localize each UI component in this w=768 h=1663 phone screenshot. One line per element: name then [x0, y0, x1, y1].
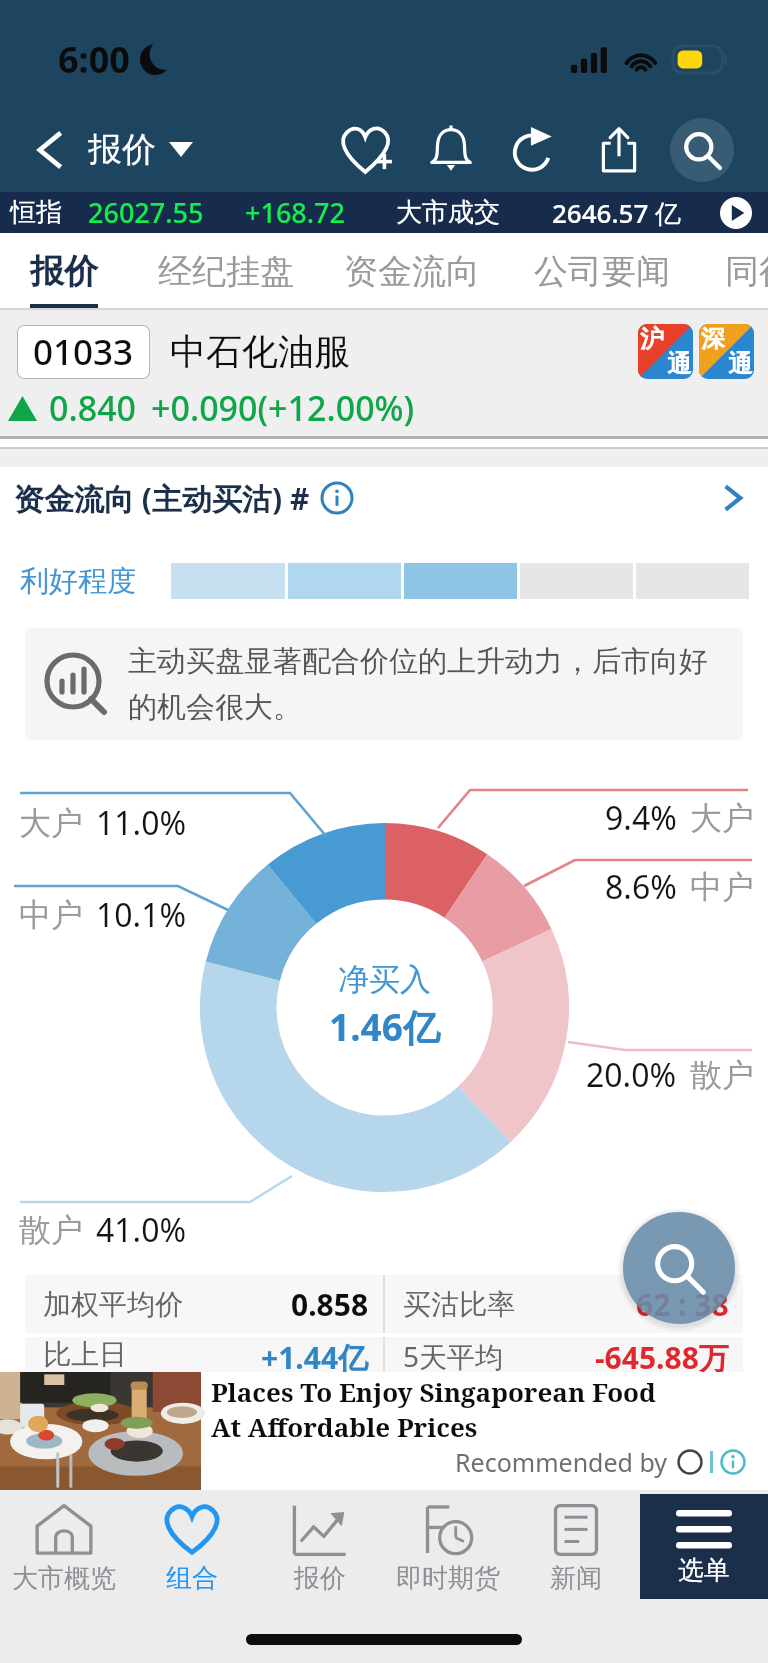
staticText: 报价 [30, 250, 98, 293]
button[interactable]: 即时期货 [384, 1494, 512, 1599]
staticText: 利好程度 [20, 563, 136, 600]
button[interactable]: 资金流向 (主动买沽) # [14, 467, 748, 529]
staticText: 恒指 [10, 196, 62, 229]
button[interactable]: 新闻 [512, 1494, 640, 1599]
button[interactable]: Alerts [416, 107, 486, 192]
staticText: 主动买盘显著配合价位的上升动力，后市向好的机会很大。 [128, 643, 718, 726]
staticText: 净买入 [338, 960, 431, 999]
button[interactable]: Back [20, 107, 80, 192]
button[interactable]: Search [623, 1212, 735, 1324]
staticText: 中石化油服 [170, 329, 350, 374]
staticText: 资金流向 (主动买沽) # [14, 478, 310, 519]
button[interactable]: 深 [699, 324, 754, 379]
staticText: 新闻 [550, 1562, 602, 1595]
staticText: 同行 [725, 250, 768, 293]
staticText: 公司要闻 [534, 250, 670, 293]
button[interactable]: Search [670, 118, 734, 182]
button[interactable]: 沪 [638, 324, 693, 379]
staticText: 大户 [690, 798, 754, 838]
button[interactable]: 大市概览 [0, 1494, 128, 1599]
staticText: 即时期货 [396, 1562, 500, 1595]
button[interactable]: Share [586, 107, 652, 192]
button[interactable]: 公司要闻 [534, 233, 670, 310]
button[interactable]: 同行 [725, 233, 768, 310]
staticText: 0.858 [291, 1284, 369, 1325]
button[interactable]: 组合 [128, 1494, 256, 1599]
staticText: 通 [728, 349, 752, 379]
staticText: 通 [667, 349, 691, 379]
staticText: 中户 [690, 867, 754, 907]
staticText: 散户 [19, 1210, 83, 1250]
staticText: At Affordable Prices [211, 1409, 478, 1444]
button[interactable]: 报价 [88, 107, 201, 192]
staticText: 中户 [19, 895, 83, 935]
staticText: 散户 [690, 1055, 754, 1095]
staticText: 选单 [678, 1554, 730, 1587]
staticText: Recommended by [455, 1445, 668, 1479]
staticText: 20.0% [586, 1053, 677, 1097]
staticText: 组合 [166, 1562, 218, 1595]
staticText: 大市成交 [396, 196, 500, 229]
staticText: 沪 [640, 324, 664, 354]
staticText: 5天平均 [403, 1337, 504, 1372]
staticText: 26027.55 [88, 194, 204, 231]
staticText: 11.0% [96, 801, 187, 845]
staticText: 大市概览 [12, 1562, 116, 1595]
staticText: 买沽比率 [403, 1287, 515, 1322]
button[interactable]: 经纪挂盘 [158, 233, 294, 310]
button[interactable]: 报价 [30, 233, 98, 310]
staticText: 大户 [19, 803, 83, 843]
button[interactable]: 报价 [256, 1494, 384, 1599]
button[interactable]: 资金流向 [344, 233, 480, 310]
staticText: 加权平均价 [43, 1287, 183, 1322]
staticText: 报价 [294, 1562, 346, 1595]
button[interactable]: Add to watchlist [328, 107, 406, 192]
staticText: 8.6% [605, 865, 677, 909]
staticText: 报价 [88, 128, 156, 171]
staticText: 6:00 [58, 35, 130, 84]
button[interactable]: 恒指 [0, 192, 768, 233]
staticText: 9.4% [605, 796, 677, 840]
staticText: 比上日 [43, 1337, 127, 1372]
staticText: 2646.57 亿 [552, 195, 682, 231]
staticText: 0.840 [49, 385, 137, 431]
staticText: 资金流向 [344, 250, 480, 293]
staticText: 41.0% [96, 1208, 187, 1252]
staticText: 01033 [33, 328, 134, 376]
staticText: 经纪挂盘 [158, 250, 294, 293]
staticText: Places To Enjoy Singaporean Food [211, 1374, 656, 1409]
other: More [716, 482, 748, 514]
button[interactable]: Refresh [498, 107, 568, 192]
staticText: 1.46亿 [329, 1001, 440, 1052]
staticText: +1.44亿 [261, 1337, 369, 1372]
staticText: -645.88万 [595, 1337, 729, 1372]
button[interactable]: Places To Enjoy Singaporean Food [0, 1372, 768, 1490]
staticText: +0.090(+12.00%) [151, 385, 415, 431]
button[interactable]: 选单 [640, 1494, 768, 1599]
staticText: 10.1% [96, 893, 187, 937]
staticText: 62 : 38 [636, 1284, 729, 1325]
staticText: +168.72 [245, 194, 346, 231]
staticText: 深 [701, 324, 725, 354]
